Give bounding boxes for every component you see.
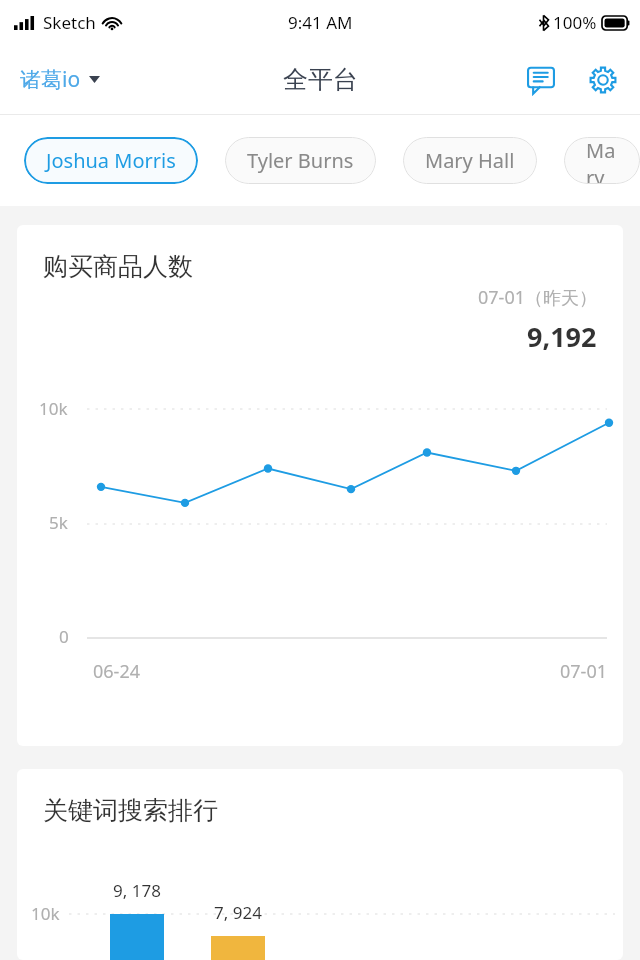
staticText: 100% bbox=[553, 11, 597, 34]
staticText: 7, 924 bbox=[211, 901, 265, 924]
staticText: Mary bbox=[586, 137, 618, 184]
button[interactable]: Tyler Burns bbox=[225, 137, 376, 184]
staticText: 5k bbox=[49, 511, 68, 534]
staticText: 9,192 bbox=[527, 318, 597, 355]
staticText: 06-24 bbox=[93, 659, 140, 684]
staticText: 10k bbox=[39, 397, 68, 420]
staticText: 10k bbox=[31, 902, 60, 925]
staticText: 全平台 bbox=[283, 64, 358, 95]
staticText: Sketch bbox=[43, 11, 96, 34]
staticText: Tyler Burns bbox=[247, 147, 354, 174]
button[interactable]: Mary bbox=[564, 137, 640, 184]
button[interactable]: 关键词搜索排行 bbox=[17, 769, 623, 960]
button[interactable]: Messages bbox=[518, 57, 564, 103]
staticText: 9:41 AM bbox=[288, 11, 353, 34]
button[interactable]: Mary Hall bbox=[403, 137, 537, 184]
button[interactable]: Settings bbox=[580, 57, 626, 103]
staticText: 关键词搜索排行 bbox=[43, 795, 218, 826]
staticText: 诸葛io bbox=[20, 65, 81, 94]
staticText: 0 bbox=[59, 625, 69, 648]
staticText: Mary Hall bbox=[425, 147, 515, 174]
button[interactable]: 购买商品人数 bbox=[17, 225, 623, 746]
staticText: 07-01 bbox=[560, 659, 607, 684]
staticText: 9, 178 bbox=[110, 879, 164, 902]
staticText: 购买商品人数 bbox=[43, 251, 193, 282]
staticText: 07-01（昨天） bbox=[478, 285, 597, 310]
button[interactable]: 诸葛io bbox=[14, 59, 106, 100]
button[interactable]: Joshua Morris bbox=[24, 137, 198, 184]
staticText: Joshua Morris bbox=[46, 147, 176, 174]
